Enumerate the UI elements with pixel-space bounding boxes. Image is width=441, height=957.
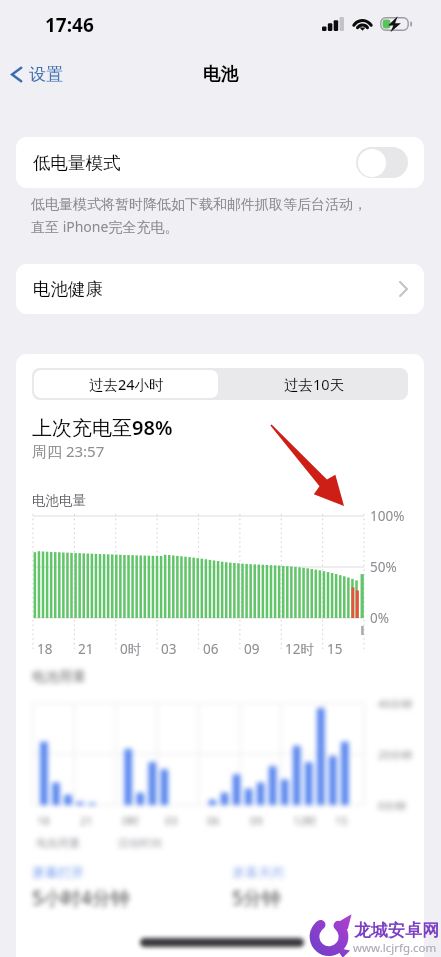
staticText: 0分钟 <box>378 798 407 813</box>
staticText: 电池电量 <box>32 492 86 509</box>
staticText: 0% <box>370 609 389 627</box>
staticText: 09 <box>244 640 260 658</box>
staticText: 电池用量 <box>36 836 80 850</box>
staticText: 03 <box>161 640 177 658</box>
button[interactable]: 过去10天 <box>220 368 408 400</box>
staticText: 21 <box>78 640 94 658</box>
staticText: 12时 <box>293 813 317 828</box>
button[interactable]: 设置 <box>10 64 63 85</box>
staticText: 18 <box>37 813 50 828</box>
button[interactable]: 电池健康 <box>16 264 424 314</box>
staticText: 低电量模式 <box>33 152 121 174</box>
staticText: 0时 <box>120 640 142 658</box>
staticText: 50% <box>370 558 397 576</box>
button[interactable]: 低电量模式开关 <box>356 147 408 178</box>
staticText: 上次充电至98% <box>32 414 173 441</box>
staticText: 18 <box>37 640 53 658</box>
staticText: 活动时间 <box>118 836 162 850</box>
staticText: 过去24小时 <box>89 374 164 394</box>
staticText: 电池用量 <box>32 668 86 685</box>
staticText: 17:46 <box>45 12 94 38</box>
staticText: 屏幕关闭 <box>232 864 284 880</box>
staticText: 06 <box>203 640 219 658</box>
staticText: 低电量模式将暂时降低如下载和邮件抓取等后台活动， 直至 iPhone完全充电。 <box>31 196 413 236</box>
staticText: 屏幕打开 <box>32 864 84 880</box>
staticText: 5分钟 <box>232 885 281 911</box>
staticText: 5小时4分钟 <box>32 885 130 911</box>
staticText: 15 <box>327 640 343 658</box>
staticText: 12时 <box>285 640 314 658</box>
staticText: 0时 <box>122 813 140 828</box>
staticText: www.lcjrfg.com <box>353 940 437 956</box>
staticText: 过去10天 <box>284 374 345 394</box>
staticText: 电池健康 <box>33 278 103 300</box>
staticText: 100% <box>370 507 405 525</box>
staticText: 40分钟 <box>378 696 413 711</box>
button[interactable]: 低电量模式 <box>16 137 424 188</box>
button[interactable]: 过去24小时 <box>34 370 218 398</box>
staticText: 周四 23:57 <box>32 441 105 461</box>
staticText: 15 <box>335 813 348 828</box>
staticText: 09 <box>250 813 263 828</box>
staticText: 21 <box>80 813 93 828</box>
staticText: 电池 <box>203 63 238 85</box>
staticText: 龙城安卓网 <box>354 920 439 941</box>
staticText: 设置 <box>29 64 63 85</box>
staticText: 20分钟 <box>378 747 413 762</box>
staticText: 06 <box>207 813 220 828</box>
staticText: 03 <box>165 813 178 828</box>
